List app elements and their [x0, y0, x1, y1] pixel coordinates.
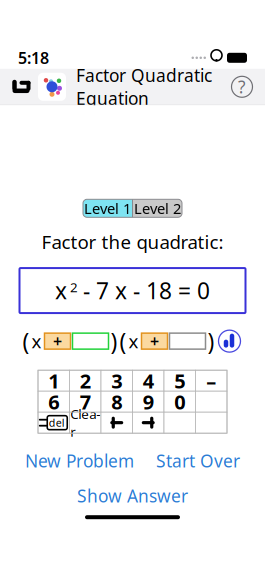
staticText: +	[150, 330, 159, 352]
button[interactable]: 2	[69, 370, 101, 391]
button[interactable]: 1	[38, 370, 69, 391]
staticText: +	[53, 330, 62, 352]
button[interactable]: Answer field	[169, 333, 205, 349]
staticText: del	[49, 416, 65, 430]
staticText: 5:18	[18, 47, 49, 68]
staticText: Level 2	[134, 198, 181, 218]
button[interactable]: Level 1	[83, 199, 132, 217]
button[interactable]: –	[195, 370, 227, 391]
button[interactable]: New Problem	[25, 449, 134, 472]
staticText: 2	[70, 278, 78, 296]
staticText: Clear	[70, 405, 100, 440]
staticText	[185, 330, 189, 352]
staticText: 1	[48, 367, 59, 394]
staticText: (	[119, 326, 126, 356]
staticText: )	[110, 326, 117, 356]
button[interactable]: Start Over	[156, 449, 240, 472]
staticText: x	[128, 329, 138, 353]
staticText: 9	[143, 388, 154, 415]
button[interactable]: Answer field	[72, 333, 108, 349]
staticText: 7	[80, 388, 91, 415]
button[interactable]: Check answer	[216, 328, 242, 354]
button[interactable]: 4	[132, 370, 164, 391]
staticText: 6	[48, 388, 59, 415]
staticText: 8	[111, 388, 122, 415]
staticText	[177, 408, 183, 438]
staticText: x	[55, 275, 67, 306]
button[interactable]: 3	[101, 370, 132, 391]
staticText: 5	[174, 367, 185, 394]
staticText: Start Over	[156, 449, 240, 472]
staticText: ?	[238, 75, 246, 98]
staticText: New Problem	[25, 449, 134, 472]
staticText: )	[207, 326, 214, 356]
staticText: –	[206, 367, 216, 394]
button[interactable]: Level 2	[133, 199, 182, 217]
staticText: - 7 x - 18 = 0	[83, 275, 210, 306]
button[interactable]: Move left	[101, 412, 132, 433]
button[interactable]: 7	[69, 391, 101, 412]
button[interactable]: Sign	[44, 333, 70, 349]
staticText: 2	[80, 367, 91, 394]
staticText: 3	[111, 367, 122, 394]
button[interactable]: Clear	[69, 412, 101, 433]
staticText: Level 1	[84, 198, 131, 218]
button[interactable]: 0	[164, 391, 195, 412]
button[interactable]: Move right	[132, 412, 164, 433]
staticText: Show Answer	[77, 484, 188, 507]
button[interactable]: Sign	[141, 333, 167, 349]
button[interactable]: 6	[38, 391, 69, 412]
button[interactable]: Delete	[38, 412, 69, 433]
staticText: (	[22, 326, 29, 356]
staticText: Factor the quadratic:	[41, 229, 223, 254]
button[interactable]: Back	[0, 69, 38, 105]
staticText: 0	[174, 388, 185, 415]
staticText: Factor Quadratic Equation	[76, 64, 212, 110]
staticText	[88, 330, 92, 352]
button[interactable]: 9	[132, 391, 164, 412]
button[interactable]: 8	[101, 391, 132, 412]
staticText	[208, 387, 214, 417]
staticText	[208, 408, 214, 438]
staticText: 4	[143, 367, 154, 394]
button[interactable]: 5	[164, 370, 195, 391]
button[interactable]: Show Answer	[77, 484, 188, 507]
staticText: x	[31, 329, 41, 353]
button[interactable]: Help	[225, 69, 259, 105]
